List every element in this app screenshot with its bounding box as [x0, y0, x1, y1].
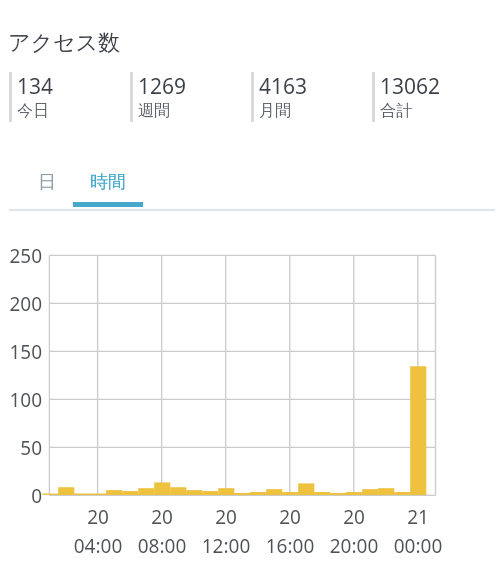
- staticText: 200: [0, 291, 42, 317]
- staticText: 150: [0, 339, 42, 365]
- staticText: 時間: [90, 171, 126, 194]
- button[interactable]: 134: [9, 70, 130, 124]
- button[interactable]: 13062: [372, 70, 493, 124]
- staticText: 今日: [17, 101, 49, 121]
- staticText: 16:00: [250, 533, 330, 559]
- staticText: 100: [0, 387, 42, 413]
- staticText: 1269: [138, 72, 187, 101]
- staticText: アクセス数: [8, 29, 121, 57]
- staticText: 13062: [380, 72, 441, 101]
- staticText: 50: [0, 435, 42, 461]
- staticText: 20: [58, 504, 138, 530]
- staticText: 4163: [259, 72, 308, 101]
- button[interactable]: 時間: [73, 171, 143, 207]
- staticText: 週間: [138, 101, 170, 121]
- staticText: 20: [314, 504, 394, 530]
- staticText: 20: [122, 504, 202, 530]
- staticText: 12:00: [186, 533, 266, 559]
- staticText: 134: [17, 72, 54, 101]
- staticText: 04:00: [58, 533, 138, 559]
- staticText: 21: [378, 504, 458, 530]
- staticText: 月間: [259, 101, 291, 121]
- staticText: 日: [38, 171, 56, 194]
- staticText: 20:00: [314, 533, 394, 559]
- button[interactable]: 4163: [251, 70, 372, 124]
- button[interactable]: 日: [12, 171, 82, 207]
- staticText: 20: [186, 504, 266, 530]
- staticText: 20: [250, 504, 330, 530]
- staticText: 0: [0, 483, 42, 509]
- staticText: 00:00: [378, 533, 458, 559]
- staticText: 250: [0, 243, 42, 269]
- staticText: 08:00: [122, 533, 202, 559]
- staticText: 合計: [380, 101, 412, 121]
- button[interactable]: 1269: [130, 70, 251, 124]
